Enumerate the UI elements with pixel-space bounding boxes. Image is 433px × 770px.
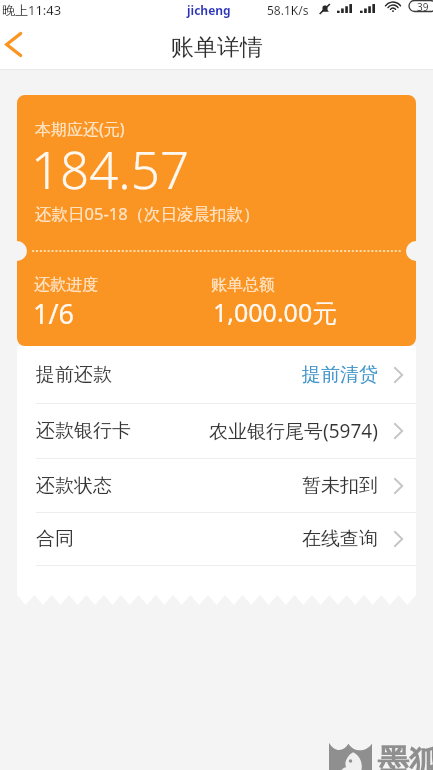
staticText: 合同 (36, 527, 74, 551)
staticText: 39 (417, 0, 429, 12)
staticText: 1/6 (33, 295, 74, 332)
staticText: 184.57 (31, 134, 190, 203)
staticText: 晚上11:43 (2, 1, 62, 19)
button[interactable]: 提前还款 (17, 346, 416, 403)
staticText: 还款进度 (34, 275, 98, 295)
staticText: 还款银行卡 (36, 419, 131, 443)
staticText: 提前清贷 (302, 363, 378, 387)
button[interactable]: 还款银行卡 (17, 404, 416, 458)
staticText: 提前还款 (36, 363, 112, 387)
staticText: 农业银行尾号(5974) (209, 418, 378, 444)
staticText: 1,000.00元 (213, 295, 338, 329)
staticText: jicheng (187, 2, 231, 18)
button[interactable]: Back (0, 19, 44, 70)
staticText: 还款状态 (36, 474, 112, 498)
button[interactable]: 还款状态 (17, 459, 416, 512)
staticText: 账单总额 (211, 275, 275, 295)
staticText: 本期应还(元) (35, 118, 125, 140)
staticText: 还款日05-18（次日凌晨扣款） (35, 202, 260, 225)
staticText: 账单详情 (171, 33, 263, 62)
staticText: 58.1K/s (267, 2, 309, 18)
staticText: 暂未扣到 (302, 474, 378, 498)
staticText: 在线查询 (302, 527, 378, 551)
button[interactable]: 合同 (17, 513, 416, 565)
staticText: 墨狐 (377, 741, 433, 770)
